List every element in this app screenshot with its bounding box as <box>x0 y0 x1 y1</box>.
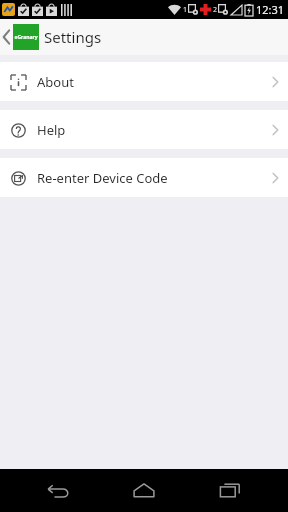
staticText: Settings <box>44 27 102 47</box>
button[interactable]: Re-enter Device Code <box>0 158 288 197</box>
button[interactable]: Back <box>30 469 86 512</box>
staticText: eGranary <box>14 34 38 41</box>
staticText: About <box>37 73 272 91</box>
button[interactable]: Back <box>1 24 41 50</box>
staticText: 12:31 <box>256 2 285 17</box>
staticText: Re-enter Device Code <box>37 169 272 187</box>
staticText: 1 <box>183 5 188 15</box>
button[interactable]: Recent apps <box>202 469 258 512</box>
staticText: Help <box>37 121 272 139</box>
button[interactable]: About <box>0 62 288 101</box>
button[interactable]: Help <box>0 110 288 149</box>
staticText: 2 <box>213 5 218 15</box>
button[interactable]: Home <box>116 469 172 512</box>
